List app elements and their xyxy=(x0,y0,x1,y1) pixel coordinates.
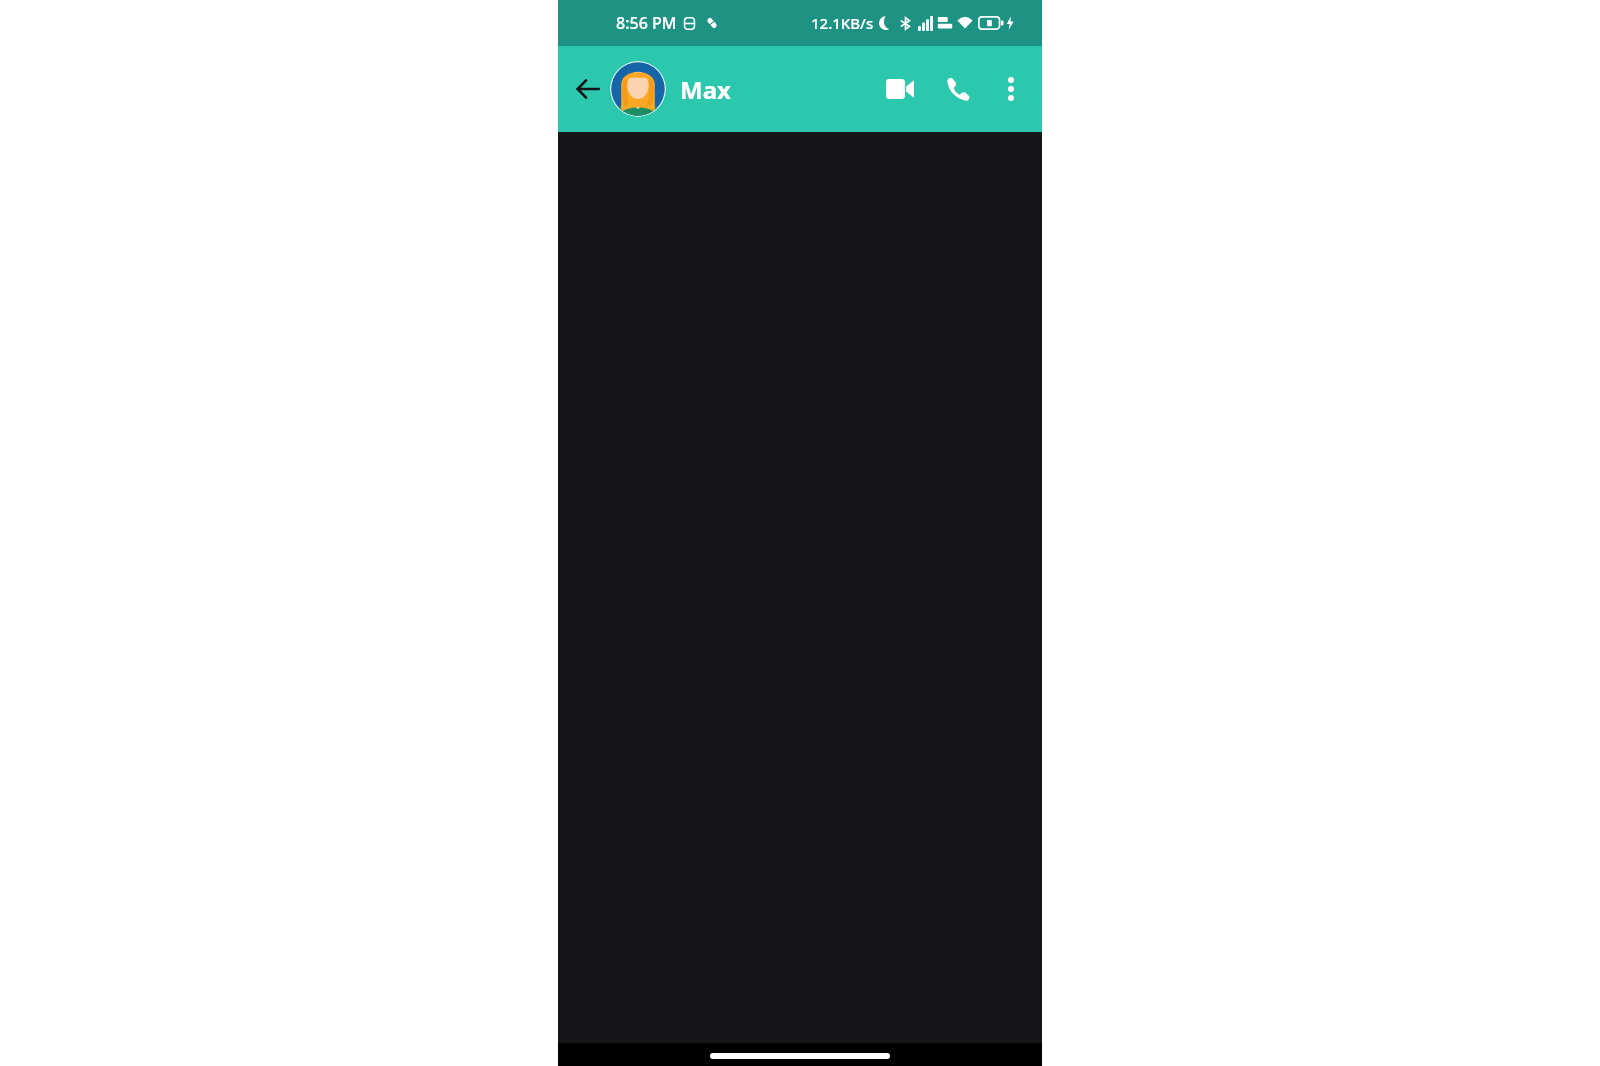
button[interactable]: Video call xyxy=(876,65,924,113)
button[interactable]: Back xyxy=(566,67,610,111)
button[interactable]: More options xyxy=(988,66,1034,112)
button[interactable]: Max xyxy=(680,46,876,132)
button[interactable]: Contact photo xyxy=(610,61,666,117)
button[interactable]: Voice call xyxy=(934,65,982,113)
staticText: 8:56 PM xyxy=(616,12,677,34)
staticText: Max xyxy=(680,73,731,106)
staticText: 12.1KB/s xyxy=(811,13,874,33)
